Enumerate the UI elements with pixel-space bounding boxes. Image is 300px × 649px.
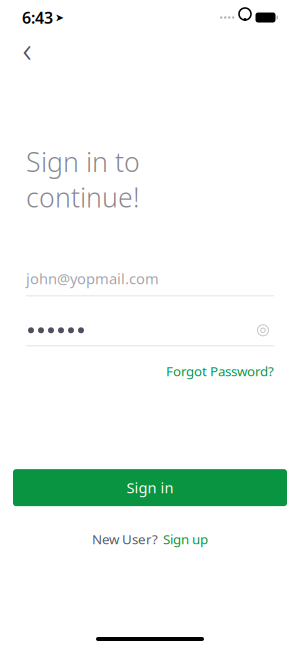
button[interactable]: Forgot Password? — [166, 362, 274, 380]
button[interactable]: Back — [10, 32, 44, 66]
staticText: 6:43 — [22, 7, 53, 28]
staticText: Sign in — [126, 478, 173, 497]
button[interactable]: New User? — [92, 530, 208, 548]
staticText: New User? — [92, 530, 158, 548]
staticText: john@yopmail.com — [26, 269, 159, 288]
staticText: Sign in to continue! — [26, 144, 140, 215]
button[interactable]: Show password — [252, 321, 274, 339]
button[interactable]: Sign in — [13, 469, 287, 506]
staticText: ‹ — [22, 26, 31, 72]
staticText: Sign up — [163, 530, 208, 548]
staticText: Forgot Password? — [166, 362, 274, 380]
staticText: ➤ — [55, 11, 64, 23]
